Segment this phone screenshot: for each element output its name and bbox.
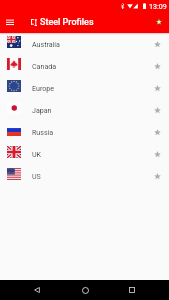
button[interactable]: Home	[75, 280, 95, 300]
button[interactable]: Japan	[0, 99, 169, 121]
button[interactable]: UK	[0, 143, 169, 165]
button[interactable]: Toggle favourite UK	[146, 143, 168, 165]
staticText: Steel Profiles	[40, 17, 94, 28]
staticText: Canada	[32, 62, 57, 70]
button[interactable]: US	[0, 165, 169, 187]
button[interactable]: Favourites	[149, 11, 169, 33]
button[interactable]: Toggle favourite Japan	[146, 99, 168, 121]
button[interactable]: Open navigation drawer	[0, 11, 19, 33]
staticText: Australia	[32, 40, 60, 48]
button[interactable]: Recent apps	[122, 280, 142, 300]
button[interactable]: Europe	[0, 77, 169, 99]
staticText: Russia	[32, 128, 54, 136]
button[interactable]: Toggle favourite Russia	[146, 121, 168, 143]
button[interactable]: Toggle favourite Australia	[146, 33, 168, 55]
staticText: Japan	[32, 106, 52, 114]
button[interactable]: Toggle favourite Canada	[146, 55, 168, 77]
button[interactable]: Canada	[0, 55, 169, 77]
staticText: 13:09	[149, 2, 167, 10]
button[interactable]: Russia	[0, 121, 169, 143]
button[interactable]: Toggle favourite US	[146, 165, 168, 187]
button[interactable]: Australia	[0, 33, 169, 55]
staticText: UK	[32, 150, 42, 158]
button[interactable]: Back	[27, 280, 47, 300]
staticText: Europe	[32, 84, 55, 92]
button[interactable]: Toggle favourite Europe	[146, 77, 168, 99]
staticText: US	[32, 172, 41, 180]
